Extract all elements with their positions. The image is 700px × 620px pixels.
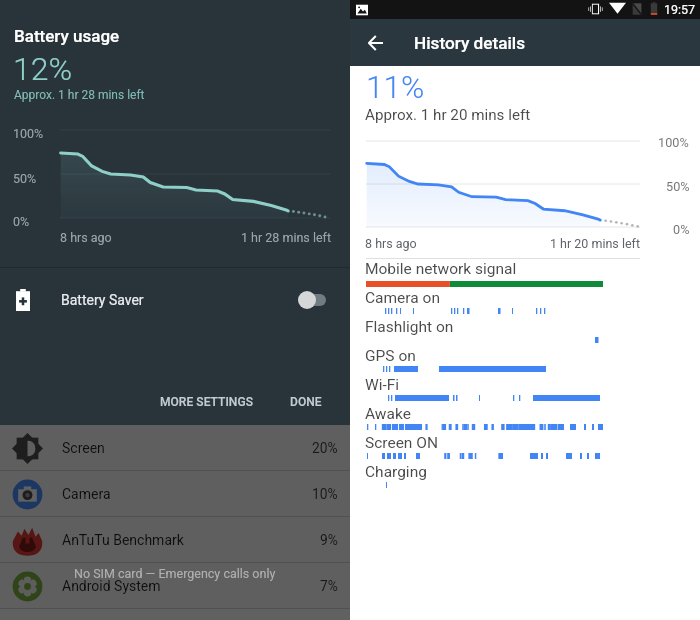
button[interactable]: MORE SETTINGS [152, 389, 261, 415]
staticText: 11% [366, 69, 425, 106]
staticText: DONE [290, 395, 322, 409]
staticText: 0% [13, 214, 30, 229]
staticText: No SIM card — Emergency calls only [74, 566, 276, 581]
staticText: 0% [673, 222, 690, 237]
staticText: 1 hr 28 mins left [230, 230, 331, 245]
button[interactable]: AnTuTu Benchmark [0, 517, 350, 562]
button[interactable]: Battery Saver [0, 277, 350, 322]
staticText: Approx. 1 hr 28 mins left [14, 88, 145, 102]
staticText: Mobile network signal [365, 260, 517, 278]
staticText: Screen ON [365, 434, 438, 452]
staticText: Camera [62, 486, 111, 502]
staticText: 20% [312, 440, 338, 456]
staticText: Screen [62, 440, 105, 456]
staticText: Android System [62, 578, 161, 594]
button[interactable]: Camera [0, 471, 350, 516]
staticText: 7% [320, 578, 338, 594]
staticText: 100% [13, 126, 44, 141]
staticText: History details [414, 33, 526, 53]
staticText: Wi-Fi [365, 376, 400, 394]
staticText: Battery usage [14, 26, 120, 46]
staticText: 100% [658, 135, 689, 150]
staticText: Approx. 1 hr 20 mins left [365, 106, 531, 124]
staticText: 19:57 [664, 2, 696, 17]
staticText: 8 hrs ago [365, 236, 417, 251]
button[interactable]: Screen [0, 425, 350, 470]
staticText: Camera on [365, 289, 440, 307]
staticText: 1 hr 20 mins left [540, 236, 640, 251]
staticText: 9% [320, 532, 338, 548]
button[interactable]: Android System [0, 563, 350, 608]
staticText: 50% [13, 171, 37, 186]
staticText: 50% [666, 179, 690, 194]
button[interactable]: Back [350, 19, 401, 66]
staticText: 8 hrs ago [60, 230, 112, 245]
staticText: Charging [365, 463, 427, 481]
staticText: Battery Saver [61, 292, 144, 308]
staticText: 10% [312, 486, 338, 502]
staticText: GPS on [365, 347, 416, 365]
staticText: 12% [13, 50, 73, 88]
staticText: MORE SETTINGS [160, 395, 253, 409]
staticText: Flashlight on [365, 318, 454, 336]
staticText: Awake [365, 405, 411, 423]
button[interactable]: DONE [282, 389, 330, 415]
staticText: AnTuTu Benchmark [62, 532, 184, 548]
